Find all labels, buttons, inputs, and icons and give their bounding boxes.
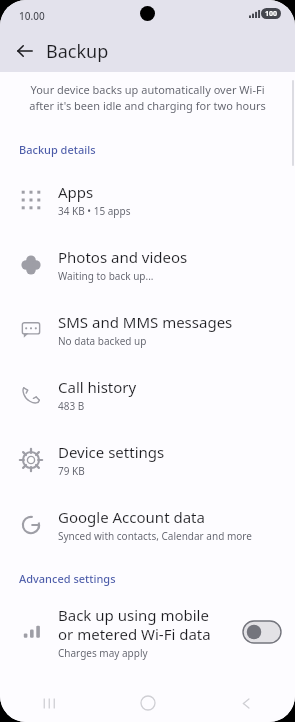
staticText: Google Account data	[58, 507, 205, 527]
button[interactable]: Call history	[0, 362, 295, 427]
staticText: 10.00	[19, 9, 45, 23]
button[interactable]: Back up using mobile or metered Wi-Fi da…	[243, 621, 281, 643]
button[interactable]: SMS and MMS messages	[0, 297, 295, 362]
button[interactable]: Home	[99, 684, 197, 722]
button[interactable]: Back up using mobile or metered Wi-Fi da…	[0, 596, 295, 668]
staticText: Advanced settings	[19, 571, 116, 586]
staticText: Backup details	[19, 142, 96, 157]
button[interactable]: Back	[10, 36, 40, 66]
staticText: Synced with contacts, Calendar and more	[58, 529, 252, 543]
staticText: Call history	[58, 377, 137, 397]
button[interactable]: Google Account data	[0, 492, 295, 557]
button[interactable]: Apps	[0, 167, 295, 232]
staticText: Apps	[58, 182, 94, 202]
button[interactable]: Back	[197, 684, 295, 722]
staticText: 79 KB	[58, 464, 85, 478]
button[interactable]: Recents	[0, 684, 99, 722]
staticText: Device settings	[58, 442, 165, 462]
staticText: No data backed up	[58, 334, 147, 348]
staticText: 34 KB • 15 apps	[58, 204, 131, 218]
staticText: 483 B	[58, 399, 85, 413]
staticText: 100	[265, 9, 278, 19]
staticText: Your device backs up automatically over …	[20, 82, 275, 114]
staticText: Photos and videos	[58, 247, 188, 267]
staticText: SMS and MMS messages	[58, 312, 233, 332]
staticText: Waiting to back up...	[58, 269, 154, 283]
staticText: Back up using mobile or metered Wi-Fi da…	[58, 605, 211, 644]
staticText: Backup	[46, 39, 109, 64]
button[interactable]: Device settings	[0, 427, 295, 492]
button[interactable]: Photos and videos	[0, 232, 295, 297]
staticText: Charges may apply	[58, 646, 148, 660]
